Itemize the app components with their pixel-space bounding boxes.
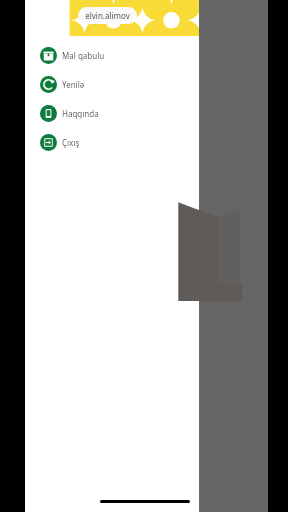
- staticText: Haqqında: [62, 108, 99, 119]
- button[interactable]: Close menu: [199, 0, 268, 512]
- staticText: Mal qabulu: [62, 50, 105, 61]
- staticText: Çıxış: [62, 137, 80, 148]
- button[interactable]: Yenilə: [25, 70, 199, 99]
- button[interactable]: elvin.alimov: [78, 7, 137, 24]
- button[interactable]: Haqqında: [25, 99, 199, 128]
- staticText: Yenilə: [62, 79, 85, 90]
- staticText: elvin.alimov: [85, 10, 130, 21]
- button[interactable]: Mal qabulu: [25, 41, 199, 70]
- button[interactable]: Çıxış: [25, 128, 199, 157]
